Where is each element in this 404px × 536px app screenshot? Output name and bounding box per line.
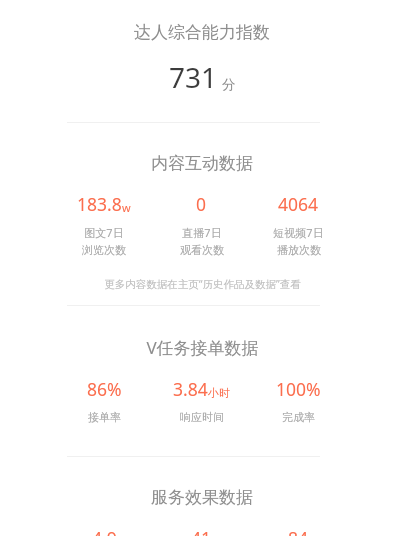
staticText: 达人综合能力指数 [134, 22, 270, 43]
staticText: 观看次数 [180, 243, 224, 257]
staticText: 41 [191, 526, 212, 536]
staticText: 4064 [278, 192, 319, 216]
button[interactable]: 41 [153, 526, 250, 536]
staticText: 4.9 [92, 526, 117, 536]
staticText: 浏览次数 [82, 243, 126, 257]
button[interactable]: 3.84 [153, 377, 250, 424]
staticText: 84 [288, 526, 309, 536]
staticText: 播放次数 [277, 243, 321, 257]
button[interactable]: 86% [55, 377, 153, 424]
staticText: 图文7日 [84, 225, 124, 240]
button[interactable]: 4.9 [55, 526, 153, 536]
staticText: 服务效果数据 [151, 487, 253, 508]
staticText: 内容互动数据 [151, 153, 253, 174]
staticText: 直播7日 [182, 225, 222, 240]
staticText: 小时 [208, 386, 230, 400]
staticText: 731 [169, 58, 218, 96]
staticText: 86% [87, 377, 122, 401]
staticText: 完成率 [282, 410, 315, 424]
staticText: 分 [222, 76, 236, 93]
staticText: V任务接单数据 [146, 336, 259, 359]
staticText: 响应时间 [180, 410, 224, 424]
staticText: 短视频7日 [273, 225, 324, 240]
button[interactable]: 183.8 [55, 192, 153, 257]
button[interactable]: 更多内容数据在主页“历史作品及数据”查看 [104, 277, 301, 291]
staticText: 3.84 [173, 377, 208, 401]
button[interactable]: 4064 [250, 192, 347, 257]
staticText: 接单率 [88, 410, 121, 424]
staticText: 0 [196, 192, 207, 216]
staticText: 183.8 [77, 192, 122, 216]
button[interactable]: 100% [250, 377, 347, 424]
staticText: w [122, 200, 131, 215]
staticText: 100% [276, 377, 321, 401]
button[interactable]: 0 [153, 192, 250, 257]
button[interactable]: 84 [250, 526, 347, 536]
